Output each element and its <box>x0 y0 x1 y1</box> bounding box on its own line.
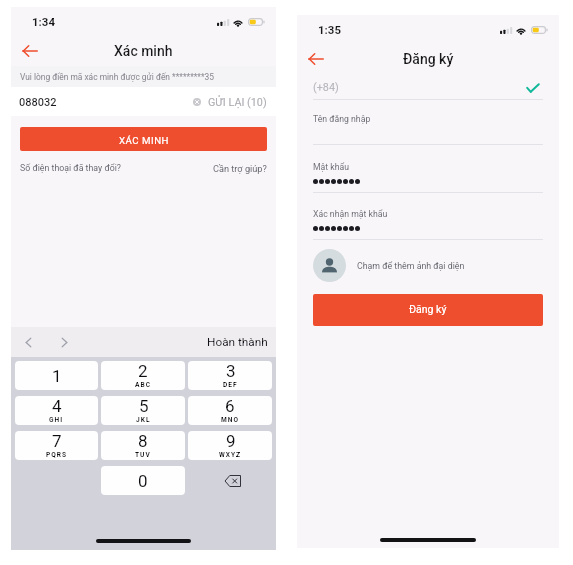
button[interactable]: Số điện thoại đã thay đổi? <box>20 163 121 173</box>
staticText: 8 <box>138 431 148 451</box>
staticText: 2 <box>138 361 148 381</box>
staticText: Đăng ký <box>403 51 454 67</box>
staticText: ABC <box>135 381 151 389</box>
staticText: 1 <box>52 366 62 386</box>
button[interactable]: Next field <box>56 334 72 350</box>
staticText: 1:35 <box>318 23 342 36</box>
button[interactable]: 8 <box>101 431 185 460</box>
staticText: Vui lòng điền mã xác minh được gửi đến *… <box>20 72 215 82</box>
staticText: 1:34 <box>32 15 56 28</box>
button[interactable]: Previous field <box>20 334 36 350</box>
button[interactable]: XÁC MINH <box>20 127 267 151</box>
button[interactable]: Delete <box>188 466 272 495</box>
button[interactable]: 4 <box>15 396 98 425</box>
staticText: TUV <box>135 451 151 459</box>
button[interactable]: 3 <box>188 361 272 390</box>
staticText: 088032 <box>19 96 57 109</box>
button[interactable]: 7 <box>15 431 98 460</box>
button[interactable]: 1 <box>15 361 98 390</box>
staticText: MNO <box>221 416 239 424</box>
staticText: Xác nhận mật khẩu <box>313 209 388 219</box>
staticText: Mật khẩu <box>313 162 350 172</box>
staticText: DEF <box>223 381 238 389</box>
button[interactable]: Cần trợ giúp? <box>213 163 267 174</box>
button[interactable]: Back <box>303 46 329 72</box>
staticText: GHI <box>49 416 64 424</box>
button[interactable]: 9 <box>188 431 272 460</box>
staticText: 9 <box>226 431 236 451</box>
button[interactable]: Đăng ký <box>313 294 543 326</box>
staticText: 4 <box>52 396 62 416</box>
staticText: PQRS <box>46 451 68 459</box>
staticText: GỬI LẠI (10) <box>208 96 267 109</box>
button[interactable]: 6 <box>188 396 272 425</box>
staticText: JKL <box>136 416 151 424</box>
button[interactable]: Back <box>17 38 43 64</box>
staticText: 0 <box>138 471 148 491</box>
button[interactable]: 0 <box>101 466 185 495</box>
button[interactable]: Hoàn thành <box>207 335 268 349</box>
button[interactable]: 2 <box>101 361 185 390</box>
button[interactable]: 5 <box>101 396 185 425</box>
button[interactable]: Chạm để thêm ảnh đại diện <box>313 249 559 282</box>
staticText: (+84) <box>313 81 339 94</box>
staticText: XÁC MINH <box>119 135 169 146</box>
staticText: Đăng ký <box>409 303 447 315</box>
staticText: 5 <box>139 396 149 416</box>
staticText: 3 <box>226 361 236 381</box>
staticText: 6 <box>225 396 235 416</box>
staticText: WXYZ <box>219 451 242 459</box>
staticText: Xác minh <box>114 43 173 59</box>
staticText: 7 <box>52 431 62 451</box>
staticText: Tên đăng nhập <box>313 114 371 124</box>
staticText: Chạm để thêm ảnh đại diện <box>357 261 465 271</box>
button[interactable]: GỬI LẠI (10) <box>193 95 267 108</box>
